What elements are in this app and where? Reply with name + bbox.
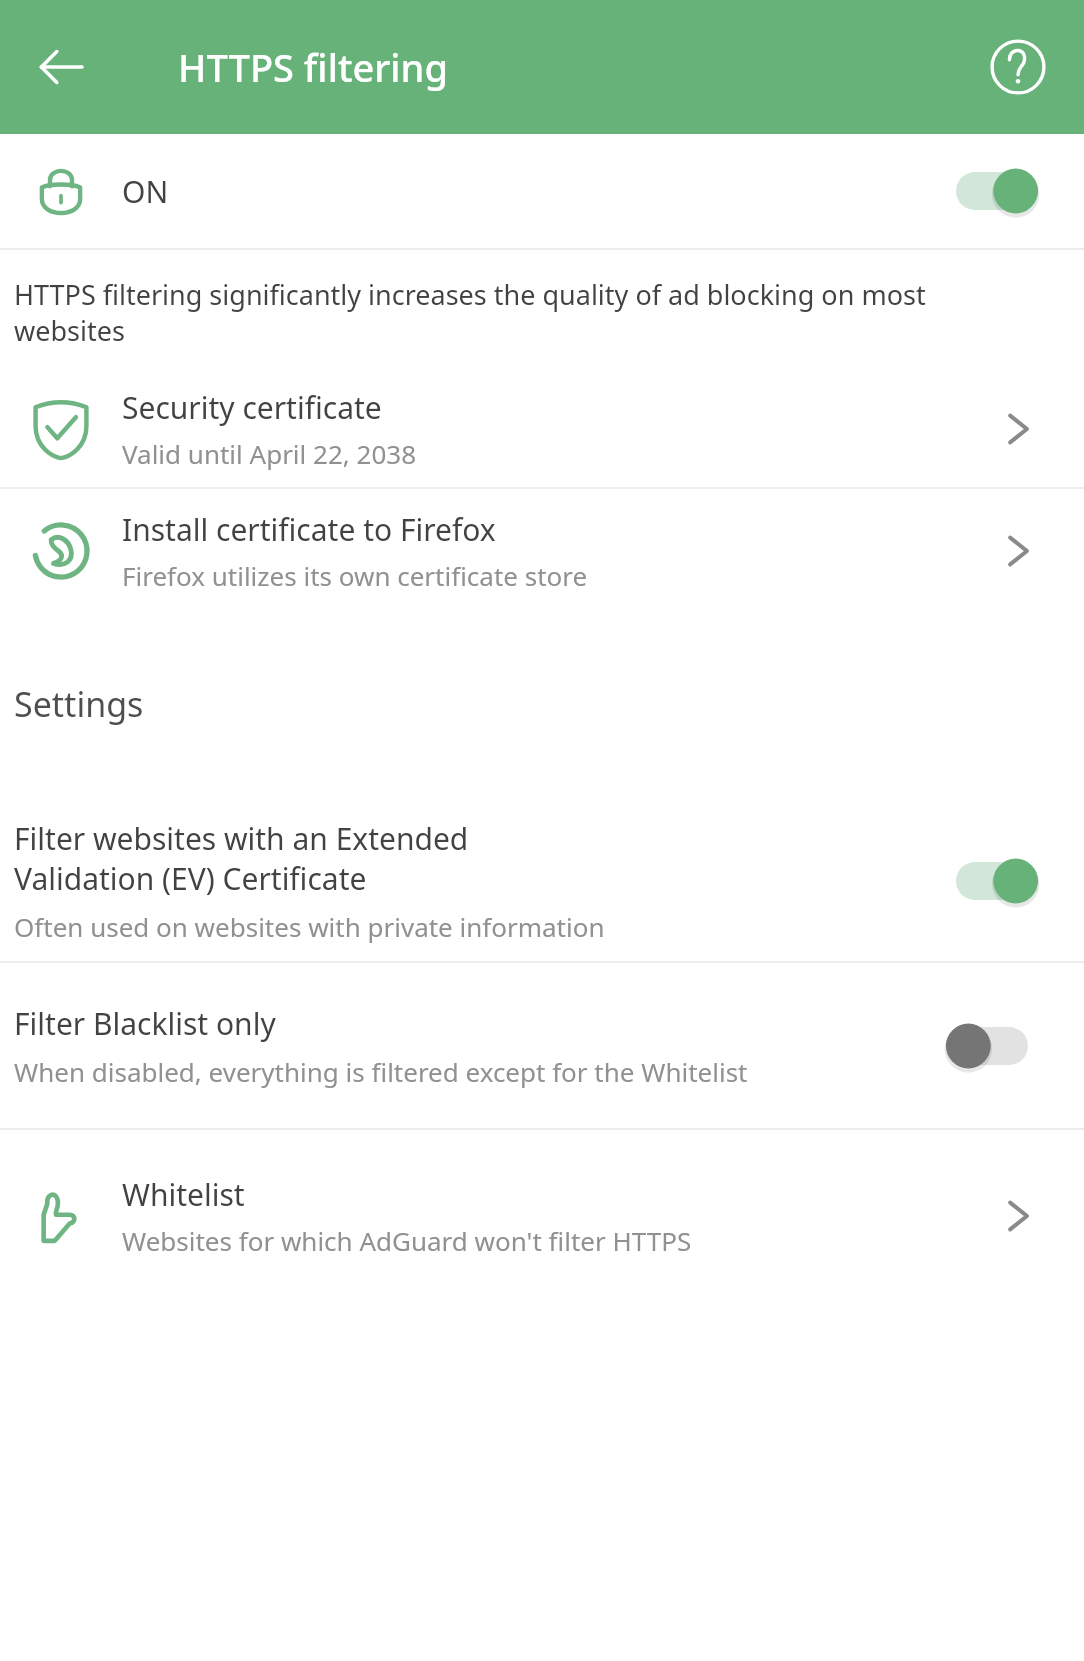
staticText: Often used on websites with private info… [14, 909, 605, 944]
button[interactable]: ON [0, 134, 1084, 248]
staticText: HTTPS filtering [178, 41, 448, 93]
button[interactable]: On [942, 843, 1042, 919]
staticText: Whitelist [122, 1174, 245, 1215]
staticText: When disabled, everything is filtered ex… [14, 1054, 748, 1089]
button[interactable]: Help [982, 31, 1054, 103]
staticText: Websites for which AdGuard won't filter … [122, 1223, 692, 1258]
staticText: Valid until April 22, 2038 [122, 436, 417, 471]
staticText: Install certificate to Firefox [122, 509, 496, 550]
button[interactable]: Security certificate [0, 370, 1084, 487]
button[interactable]: Filter Blacklist only [0, 963, 1084, 1128]
button[interactable]: Install certificate to Firefox [990, 523, 1046, 579]
staticText: Settings [14, 681, 144, 727]
button[interactable]: Off [942, 1008, 1042, 1084]
staticText: ON [122, 171, 169, 212]
staticText: HTTPS filtering significantly increases … [14, 276, 934, 349]
staticText: Filter websites with an Extended Validat… [14, 818, 615, 899]
staticText: Firefox utilizes its own certificate sto… [122, 558, 588, 593]
button[interactable]: Whitelist [0, 1130, 1084, 1302]
staticText: Filter Blacklist only [14, 1003, 742, 1044]
staticText: Security certificate [122, 387, 382, 428]
button[interactable]: On [942, 153, 1042, 229]
button[interactable]: Filter websites with an Extended Validat… [0, 801, 1084, 961]
button[interactable]: Whitelist [990, 1188, 1046, 1244]
button[interactable]: Security certificate [990, 401, 1046, 457]
button[interactable]: Install certificate to Firefox [0, 489, 1084, 613]
button[interactable]: Back [26, 32, 96, 102]
